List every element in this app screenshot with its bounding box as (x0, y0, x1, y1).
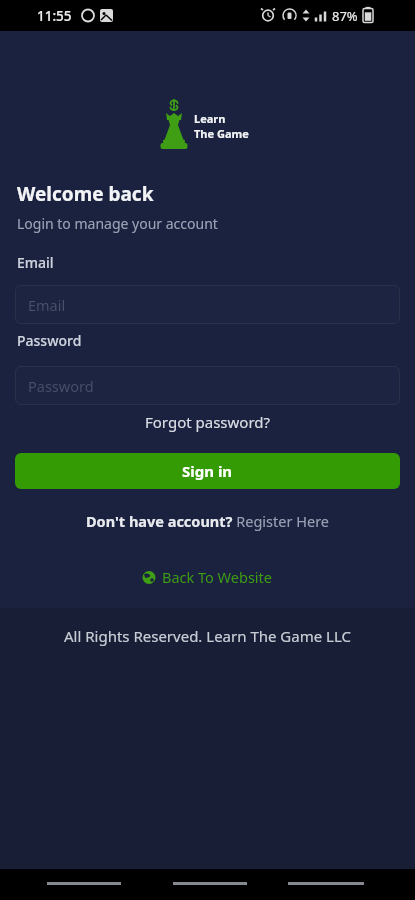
staticText: 87% (332, 7, 358, 25)
staticText: Learn (194, 111, 226, 126)
staticText: Welcome back (17, 181, 154, 207)
button[interactable]: Back To Website (142, 567, 273, 587)
button[interactable]: Sign in (15, 453, 400, 489)
staticText: Email (28, 295, 66, 315)
staticText: Sign in (182, 461, 233, 481)
staticText: Forgot password? (145, 412, 271, 432)
button[interactable]: Don't have account? Register Here (86, 511, 330, 531)
staticText: 11:55 (37, 7, 72, 25)
staticText: Back To Website (162, 567, 273, 587)
staticText: Login to manage your account (17, 214, 218, 233)
staticText: Password (28, 376, 94, 396)
staticText: Email (17, 253, 54, 272)
staticText: All Rights Reserved. Learn The Game LLC (64, 626, 351, 646)
staticText: Password (17, 331, 82, 350)
button[interactable]: Email (15, 285, 400, 324)
button[interactable]: Password (15, 366, 400, 405)
button[interactable]: Forgot password? (145, 412, 271, 432)
staticText: The Game (194, 126, 249, 141)
staticText: Don't have account? Register Here (86, 511, 330, 531)
